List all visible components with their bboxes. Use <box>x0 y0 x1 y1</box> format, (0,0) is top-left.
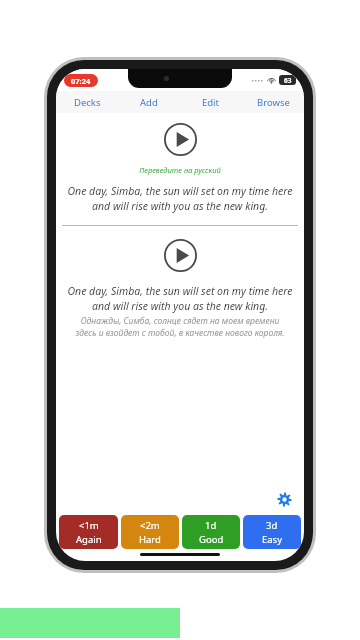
staticText: Again <box>76 533 102 546</box>
staticText: Edit <box>202 96 220 109</box>
button[interactable]: Add <box>118 91 180 113</box>
staticText: <2m <box>140 519 160 532</box>
staticText: Good <box>199 533 224 546</box>
staticText: Easy <box>262 533 283 546</box>
staticText: 3d <box>266 519 278 532</box>
button[interactable]: <2m <box>121 515 179 549</box>
button[interactable]: Decks <box>56 91 118 113</box>
button[interactable]: <1m <box>59 515 118 549</box>
button[interactable]: Settings <box>274 489 294 509</box>
staticText: 07:24 <box>71 76 91 86</box>
button[interactable]: 1d <box>182 515 240 549</box>
staticText: Browse <box>257 96 290 109</box>
staticText: One day, Simba, the sun will set on my t… <box>64 284 296 313</box>
staticText: 63 <box>284 76 292 85</box>
staticText: Hard <box>139 533 161 546</box>
staticText: 1d <box>205 519 217 532</box>
staticText: Однажды, Симба, солнце сядет на моем вре… <box>70 315 290 339</box>
button[interactable]: Play audio <box>164 123 197 156</box>
button[interactable]: 3d <box>243 515 301 549</box>
staticText: Переведите на русский <box>56 165 304 175</box>
staticText: One day, Simba, the sun will set on my t… <box>64 184 296 213</box>
staticText: <1m <box>79 519 99 532</box>
staticText: Add <box>140 96 158 109</box>
staticText: Decks <box>74 96 101 109</box>
button[interactable]: Edit <box>180 91 242 113</box>
button[interactable]: Play audio <box>164 239 197 272</box>
button[interactable]: Browse <box>242 91 304 113</box>
